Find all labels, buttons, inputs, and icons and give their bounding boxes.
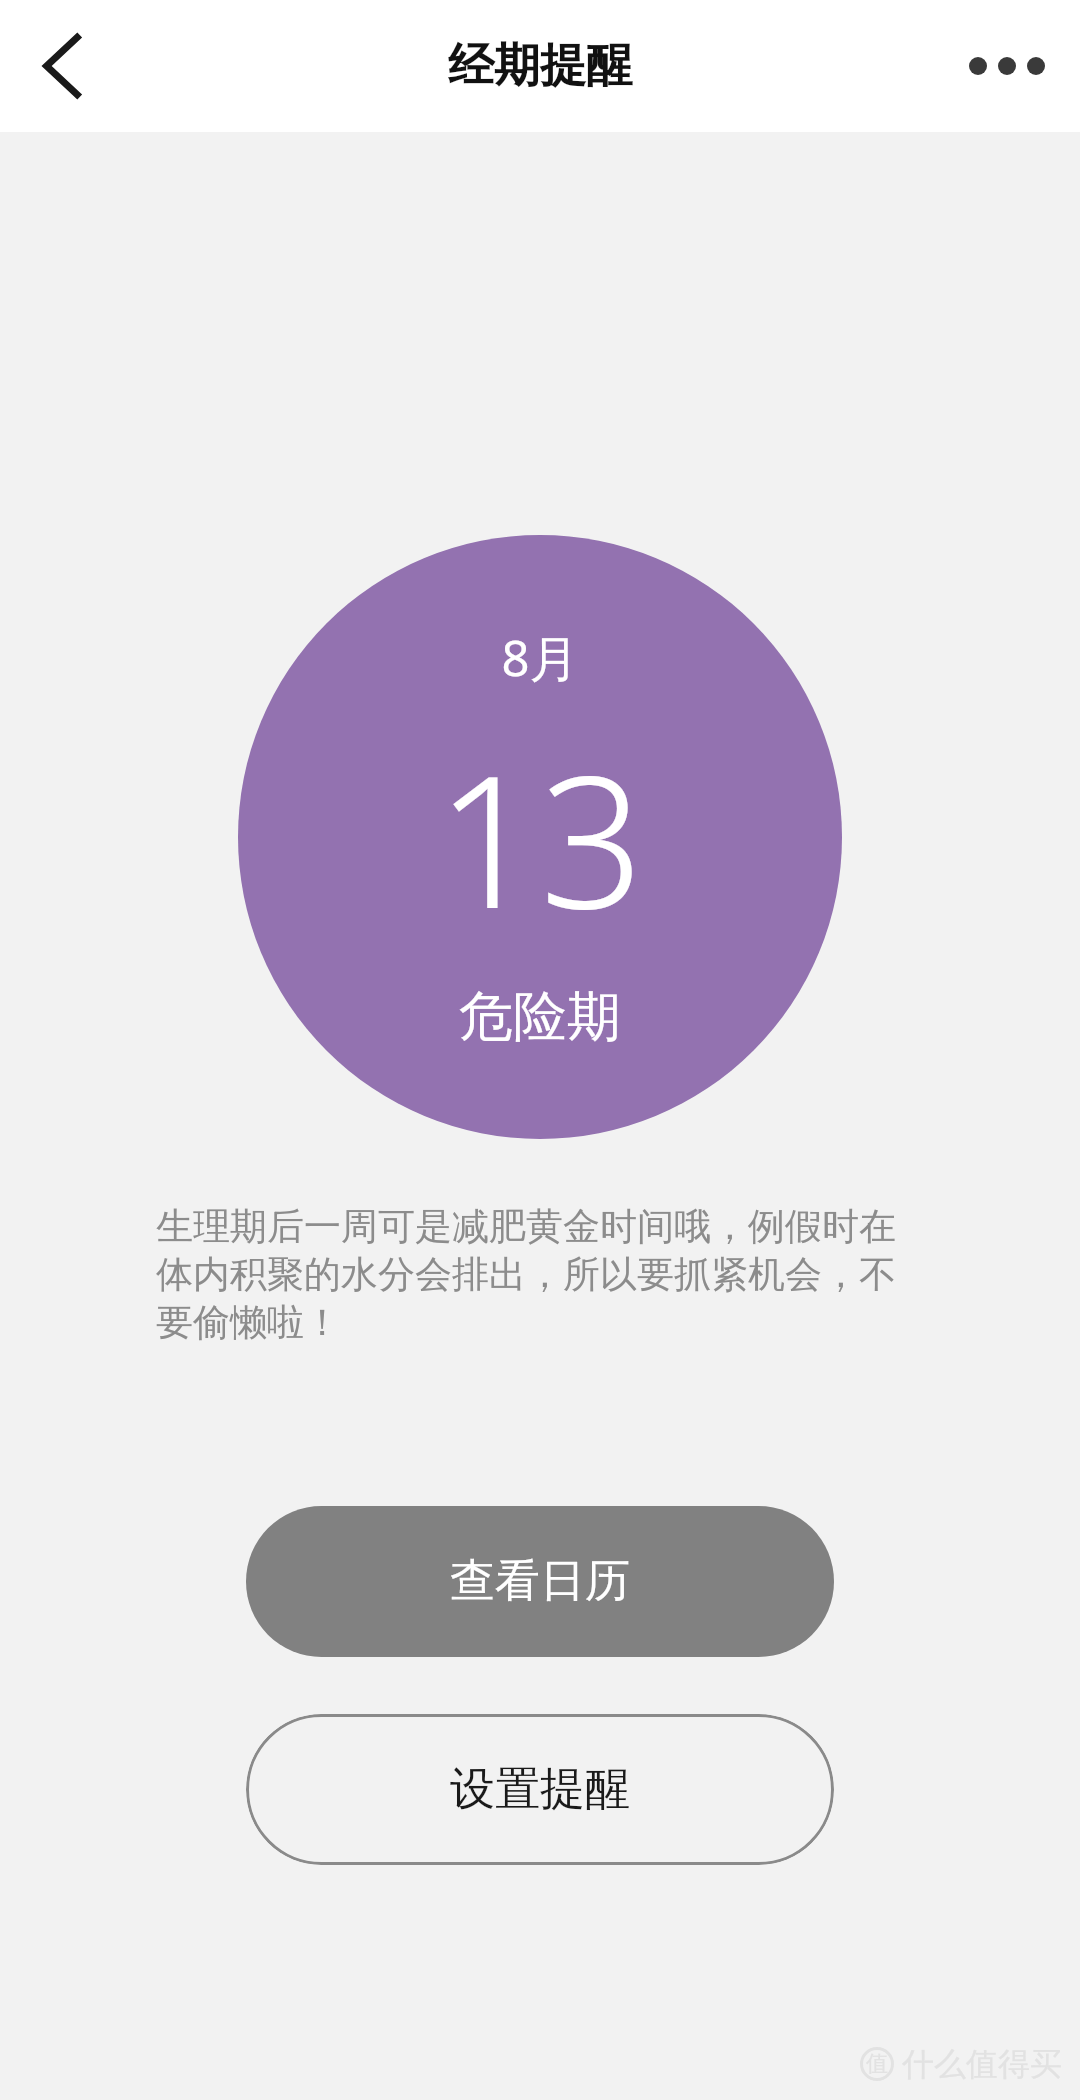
staticText: 8月 <box>501 624 579 691</box>
staticText: 值 <box>866 2050 888 2078</box>
button[interactable]: Back <box>10 11 120 121</box>
button[interactable]: 设置提醒 <box>246 1714 834 1865</box>
staticText: 什么值得买 <box>902 2044 1062 2084</box>
button[interactable]: 查看日历 <box>246 1506 834 1657</box>
staticText: 经期提醒 <box>448 37 632 95</box>
button[interactable]: More options <box>952 11 1062 121</box>
staticText: 13 <box>436 713 644 961</box>
staticText: 危险期 <box>459 983 621 1051</box>
staticText: 设置提醒 <box>450 1761 630 1818</box>
staticText: 查看日历 <box>450 1553 630 1610</box>
button[interactable]: 8月 <box>238 535 842 1139</box>
staticText: 生理期后一周可是减肥黄金时间哦，例假时在体内积聚的水分会排出，所以要抓紧机会，不… <box>156 1203 930 1346</box>
